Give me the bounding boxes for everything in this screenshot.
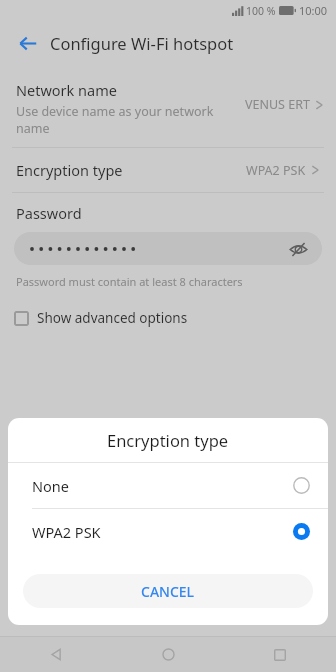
staticText: Use device name as your network	[16, 103, 214, 120]
staticText: 10:00	[299, 3, 328, 18]
button[interactable]: Recents	[224, 637, 336, 672]
staticText: None	[32, 476, 293, 496]
staticText: Show advanced options	[37, 309, 188, 327]
button[interactable]: Encryption type	[0, 148, 336, 192]
button[interactable]: Show advanced options	[0, 305, 198, 331]
button[interactable]: CANCEL	[23, 574, 313, 608]
button[interactable]: Back	[0, 637, 112, 672]
staticText: Network name	[16, 80, 117, 100]
staticText: CANCEL	[141, 582, 195, 601]
staticText: WPA2 PSK	[246, 162, 306, 179]
staticText: Encryption type	[107, 429, 229, 451]
button[interactable]: Back	[10, 26, 44, 60]
staticText: VENUS ERT	[245, 96, 310, 113]
staticText: WPA2 PSK	[32, 522, 293, 542]
staticText: name	[16, 120, 50, 137]
button[interactable]: Network name	[0, 70, 336, 147]
button[interactable]: None	[8, 463, 328, 508]
staticText: Password must contain at least 8 charact…	[16, 274, 243, 289]
button[interactable]: Show password	[286, 237, 310, 261]
staticText: 100 %	[246, 4, 276, 18]
button[interactable]: WPA2 PSK	[8, 509, 328, 554]
button[interactable]: Home	[112, 637, 224, 672]
staticText: Encryption type	[16, 160, 246, 180]
staticText: Configure Wi-Fi hotspot	[50, 32, 234, 54]
button[interactable]: Show password	[14, 232, 322, 265]
staticText: Password	[16, 203, 82, 223]
